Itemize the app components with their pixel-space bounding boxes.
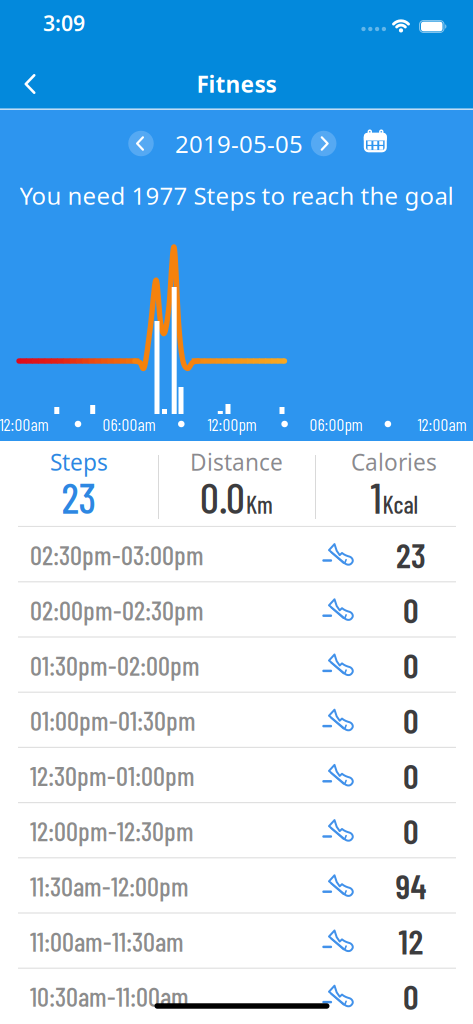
staticText: 06:00pm	[309, 414, 362, 434]
button[interactable]: Previous day	[121, 123, 161, 163]
staticText: 01:30pm-02:00pm	[30, 649, 200, 681]
staticText: 02:30pm-03:00pm	[30, 539, 204, 571]
staticText: Km	[246, 490, 273, 519]
staticText: 11:00am-11:30am	[30, 925, 184, 957]
button[interactable]: Next day	[304, 123, 344, 163]
staticText: 12:00am	[417, 414, 466, 434]
staticText: You need 1977 Steps to reach the goal	[19, 180, 453, 211]
button[interactable]: Choose date	[363, 129, 387, 155]
staticText: 0	[403, 975, 419, 1017]
staticText: 0	[403, 644, 419, 685]
staticText: 23	[396, 533, 426, 575]
staticText: 1	[370, 472, 381, 522]
staticText: 02:00pm-02:30pm	[30, 594, 204, 626]
button[interactable]: Back	[8, 62, 52, 106]
staticText: 3:09	[43, 9, 85, 37]
staticText: 0.0	[200, 472, 245, 522]
staticText: Steps	[50, 447, 108, 477]
staticText: 12	[398, 920, 423, 961]
staticText: 94	[395, 865, 426, 906]
staticText: Calories	[351, 447, 437, 477]
staticText: 12:30pm-01:00pm	[30, 759, 195, 791]
staticText: Kcal	[382, 490, 418, 519]
staticText: 23	[61, 472, 96, 522]
staticText: 06:00am	[102, 414, 155, 434]
staticText: 12:00pm-12:30pm	[30, 815, 194, 847]
staticText: 12:00am	[0, 414, 48, 434]
staticText: 12:00pm	[207, 414, 256, 434]
staticText: 0	[403, 809, 419, 851]
staticText: Distance	[190, 447, 283, 477]
staticText: 10:30am-11:00am	[30, 980, 189, 1012]
staticText: 0	[403, 699, 419, 741]
staticText: 11:30am-12:00pm	[30, 870, 189, 902]
staticText: 2019-05-05	[175, 128, 303, 160]
staticText: 01:00pm-01:30pm	[30, 704, 196, 736]
staticText: Fitness	[196, 69, 276, 99]
staticText: 0	[403, 754, 419, 796]
staticText: 0	[403, 589, 419, 630]
